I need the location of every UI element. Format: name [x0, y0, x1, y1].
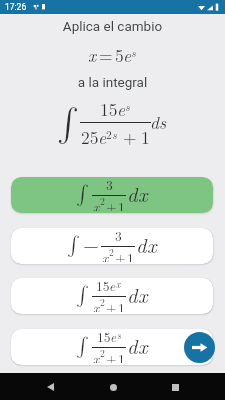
staticText: x — [93, 197, 100, 211]
button[interactable]: Back — [37, 374, 63, 400]
staticText: 1 — [118, 349, 125, 363]
staticText: + — [106, 349, 117, 363]
staticText: e — [110, 329, 117, 346]
button[interactable]: ∫ — [11, 177, 213, 213]
staticText: 1 — [141, 124, 150, 149]
staticText: x — [88, 42, 97, 67]
staticText: s — [117, 329, 121, 341]
staticText: dx — [136, 230, 158, 259]
button[interactable]: ∫ — [11, 228, 213, 264]
staticText: 2 — [100, 346, 105, 359]
staticText: a la integral — [0, 74, 225, 90]
staticText: 1 — [118, 298, 125, 312]
staticText: ∫ — [76, 184, 89, 204]
staticText: 3 — [106, 177, 113, 194]
staticText: e — [98, 124, 107, 149]
staticText: s — [112, 126, 117, 142]
staticText: ds — [150, 109, 167, 134]
staticText: x — [102, 248, 109, 262]
button[interactable]: Siguiente — [184, 332, 215, 363]
staticText: e — [117, 96, 126, 121]
button[interactable]: Recents — [162, 374, 188, 400]
staticText: dx — [127, 179, 149, 208]
staticText: 25 — [81, 124, 99, 149]
button[interactable]: Home — [100, 374, 126, 400]
staticText: e — [123, 42, 132, 67]
staticText: x — [116, 278, 121, 290]
staticText: 17:26 — [5, 2, 27, 12]
staticText: 15 — [100, 96, 118, 121]
staticText: 1 — [118, 197, 125, 211]
button[interactable]: ∫ — [11, 329, 213, 365]
staticText: + — [106, 298, 117, 312]
staticText: 2 — [106, 126, 112, 142]
staticText: + — [115, 248, 126, 262]
staticText: x — [93, 349, 100, 363]
staticText: ∫ — [76, 336, 89, 356]
staticText: 15 — [97, 329, 111, 346]
staticText: + — [123, 124, 137, 149]
staticText: 1 — [127, 248, 134, 262]
staticText: 2 — [109, 245, 114, 258]
staticText: 3 — [115, 228, 122, 245]
staticText: ∫ — [57, 107, 79, 140]
staticText: s — [125, 98, 130, 114]
button[interactable]: ∫ — [11, 278, 213, 314]
staticText: 2 — [100, 194, 105, 207]
staticText: x — [93, 298, 100, 312]
staticText: 15 — [96, 278, 110, 295]
staticText: e — [109, 278, 116, 295]
staticText: dx — [127, 331, 149, 360]
staticText: Aplica el cambio — [0, 18, 225, 34]
staticText: − — [83, 230, 99, 259]
staticText: 5 — [115, 42, 124, 67]
staticText: + — [106, 197, 117, 211]
staticText: s — [131, 44, 136, 60]
staticText: 2 — [100, 295, 105, 308]
staticText: ∫ — [67, 235, 80, 255]
staticText: ∫ — [76, 285, 89, 305]
staticText: dx — [127, 280, 149, 309]
staticText: = — [99, 42, 113, 67]
